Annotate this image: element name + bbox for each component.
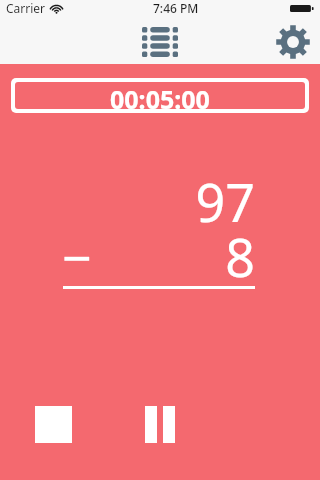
staticText: 8 xyxy=(225,221,255,292)
staticText: 97 xyxy=(195,166,255,237)
button[interactable]: List xyxy=(138,20,182,64)
staticText: 7:46 PM xyxy=(153,0,199,16)
staticText: Carrier xyxy=(6,0,46,16)
staticText: 00:05:00 xyxy=(110,82,210,109)
button[interactable]: Pause xyxy=(134,398,186,450)
button[interactable]: Settings xyxy=(272,21,314,63)
button[interactable]: 00:05:00 xyxy=(15,82,305,109)
staticText: − xyxy=(62,221,92,292)
button[interactable]: Stop xyxy=(27,398,79,450)
